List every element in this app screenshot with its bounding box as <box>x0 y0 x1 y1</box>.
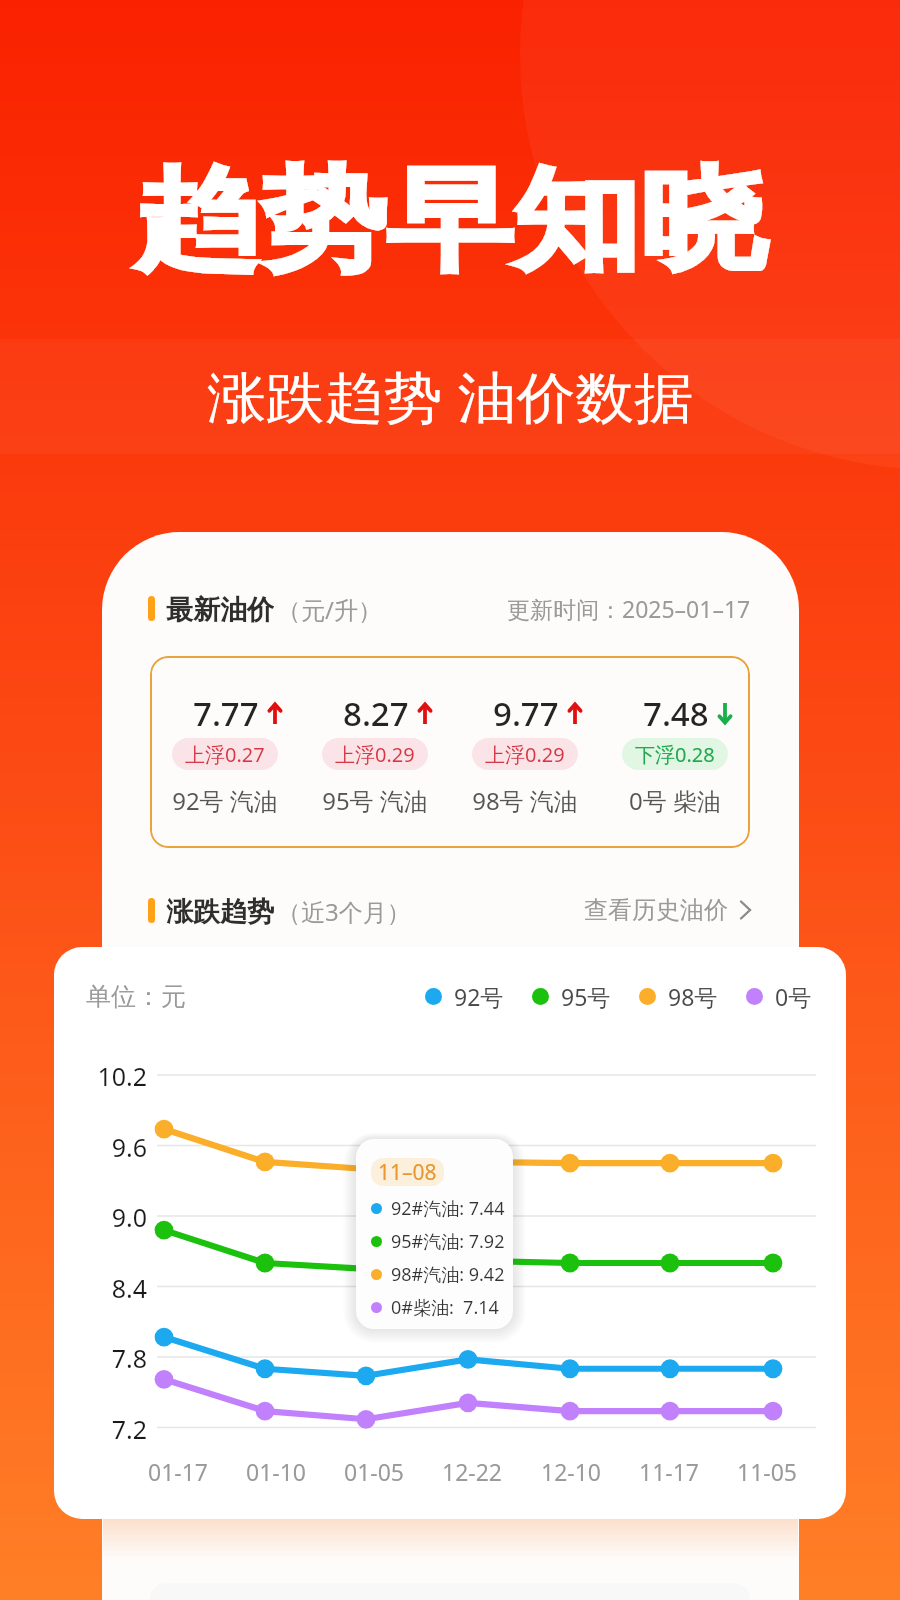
button[interactable]: 95号 <box>532 981 611 1011</box>
staticText: 95#汽油: 7.92 <box>391 1229 505 1254</box>
staticText: 98号 <box>668 981 718 1011</box>
staticText: 98#汽油: 9.42 <box>391 1262 505 1287</box>
staticText: 01-10 <box>216 1456 336 1487</box>
staticText: 11–08 <box>378 1158 437 1186</box>
staticText: 上浮0.29 <box>335 741 415 768</box>
staticText: 9.77 <box>493 691 559 736</box>
staticText: 上浮0.29 <box>485 741 565 768</box>
staticText: 98号 汽油 <box>450 784 600 817</box>
staticText: 11-05 <box>707 1456 827 1487</box>
staticText: 涨跌趋势 <box>166 895 274 925</box>
staticText: 7.77 <box>193 691 259 736</box>
staticText: 01-17 <box>118 1456 238 1487</box>
staticText: 8.27 <box>343 691 409 736</box>
staticText: （元/升） <box>277 593 382 623</box>
button[interactable]: 7.48 <box>600 656 750 848</box>
staticText: 11-17 <box>609 1456 729 1487</box>
staticText: 最新油价 <box>166 593 274 623</box>
staticText: 01-05 <box>314 1456 434 1487</box>
staticText: 0#柴油: 7.14 <box>391 1295 499 1320</box>
staticText: （近3个月） <box>277 895 411 925</box>
staticText: 95号 汽油 <box>300 784 450 817</box>
staticText: 上浮0.27 <box>185 741 265 768</box>
staticText: 下浮0.28 <box>635 741 715 768</box>
staticText: 10.2 <box>54 1059 147 1093</box>
button[interactable]: 9.77 <box>450 656 600 848</box>
staticText: 12-10 <box>511 1456 631 1487</box>
staticText: 7.2 <box>54 1412 147 1446</box>
button[interactable]: 查看历史油价 <box>584 895 751 925</box>
button[interactable]: 0号 <box>746 981 812 1011</box>
staticText: 查看历史油价 <box>584 895 728 925</box>
staticText: 更新时间：2025–01–17 <box>507 593 751 623</box>
staticText: 趋势早知晓 <box>0 152 900 291</box>
button[interactable]: 7.77 <box>150 656 300 848</box>
other: 查看历史油价 <box>740 901 751 919</box>
staticText: 涨跌趋势 油价数据 <box>0 358 900 430</box>
staticText: 92号 <box>454 981 504 1011</box>
staticText: 9.0 <box>54 1200 147 1234</box>
staticText: 8.4 <box>54 1271 147 1305</box>
staticText: 12-22 <box>412 1456 532 1487</box>
staticText: 7.48 <box>643 691 709 736</box>
staticText: 0号 柴油 <box>600 784 750 817</box>
staticText: 单位：元 <box>86 981 186 1011</box>
button[interactable]: 8.27 <box>300 656 450 848</box>
staticText: 7.8 <box>54 1341 147 1375</box>
staticText: 92#汽油: 7.44 <box>391 1196 505 1221</box>
staticText: 0号 <box>775 981 812 1011</box>
staticText: 95号 <box>561 981 611 1011</box>
button[interactable]: 98号 <box>639 981 718 1011</box>
staticText: 92号 汽油 <box>150 784 300 817</box>
staticText: 9.6 <box>54 1130 147 1164</box>
button[interactable]: 92号 <box>425 981 504 1011</box>
